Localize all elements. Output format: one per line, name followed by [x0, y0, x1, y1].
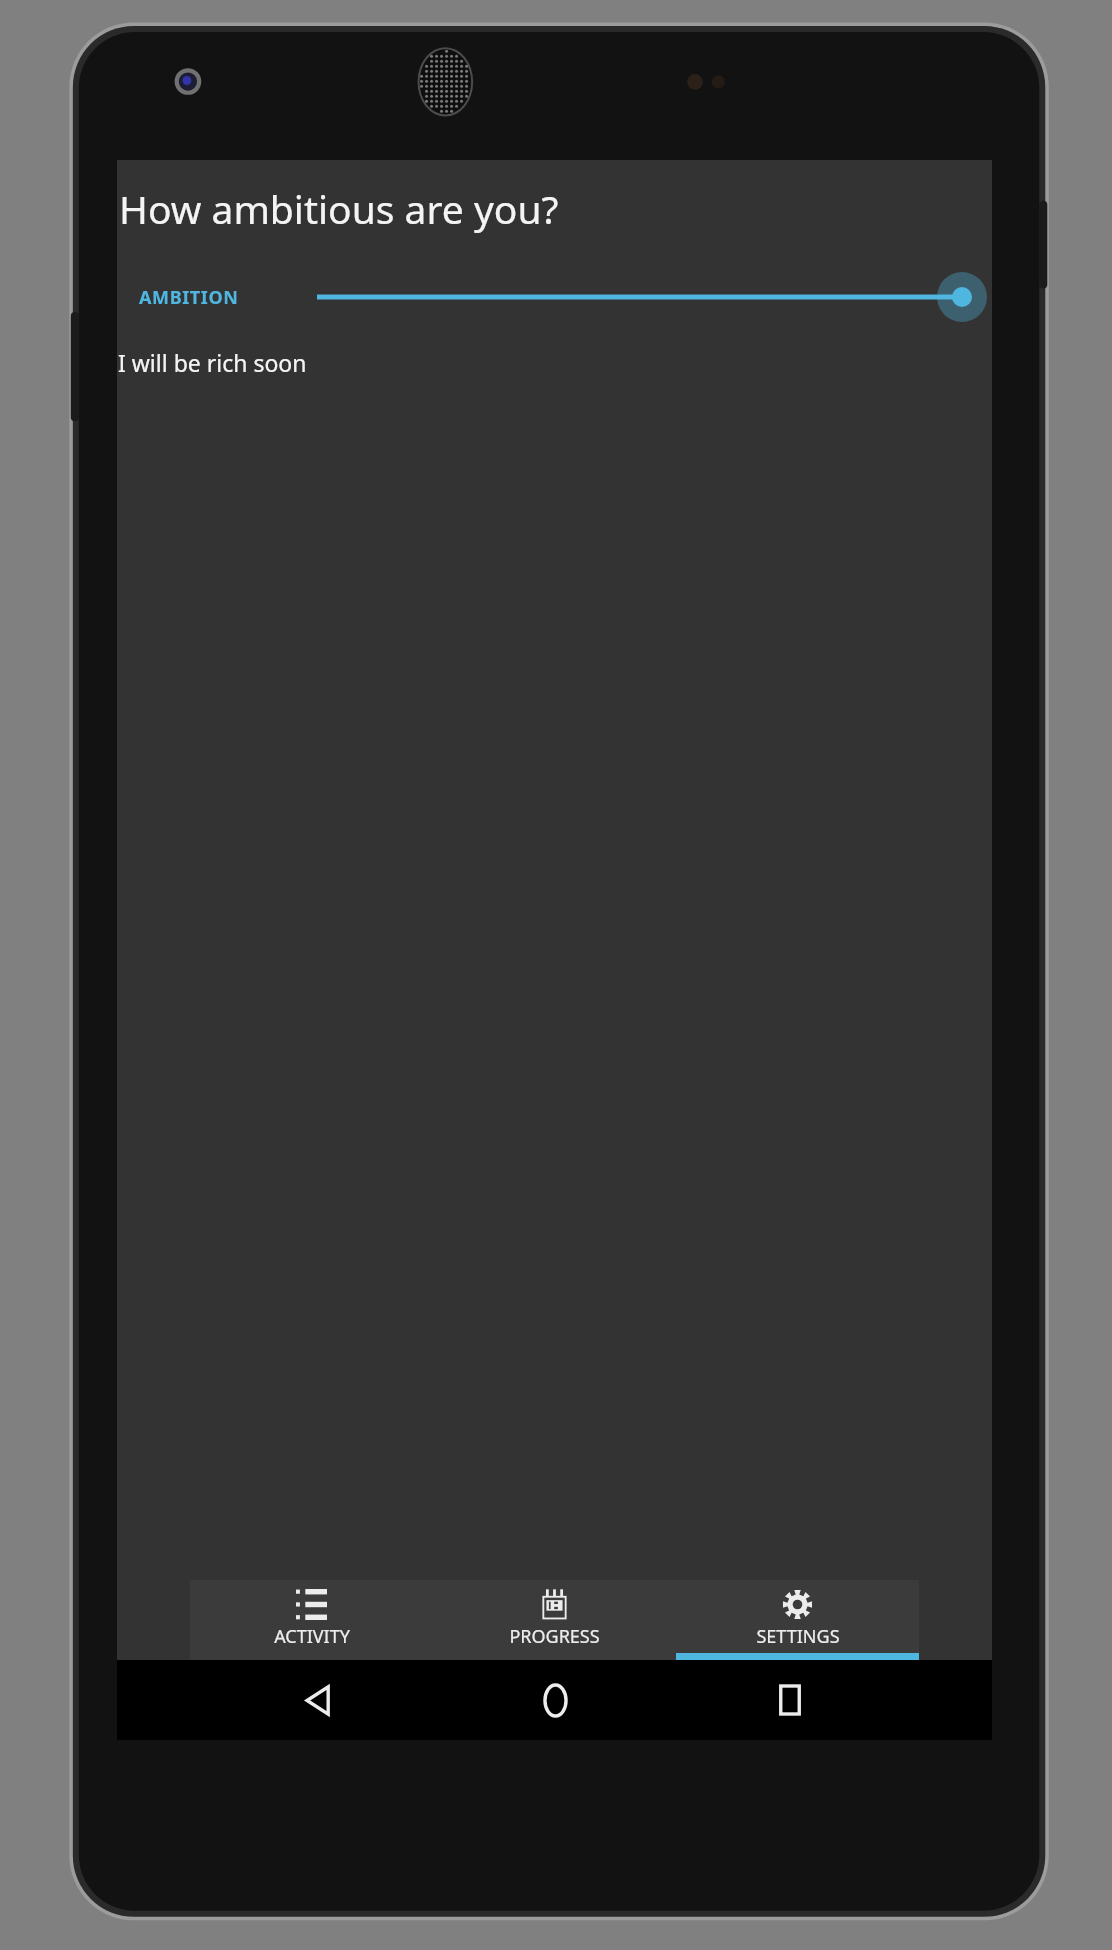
staticText: ACTIVITY: [274, 1624, 350, 1649]
staticText: AMBITION: [139, 285, 239, 310]
staticText: I will be rich soon: [118, 347, 307, 378]
button[interactable]: Home: [522, 1667, 588, 1733]
staticText: How ambitious are you?: [119, 182, 559, 235]
button[interactable]: ACTIVITY: [190, 1580, 433, 1660]
staticText: PROGRESS: [509, 1624, 600, 1649]
staticText: SETTINGS: [756, 1624, 840, 1649]
button[interactable]: [317, 269, 974, 325]
button[interactable]: Recent apps: [757, 1667, 823, 1733]
button[interactable]: PROGRESS: [433, 1580, 676, 1660]
button[interactable]: SETTINGS: [676, 1580, 919, 1660]
button[interactable]: Back: [286, 1667, 352, 1733]
